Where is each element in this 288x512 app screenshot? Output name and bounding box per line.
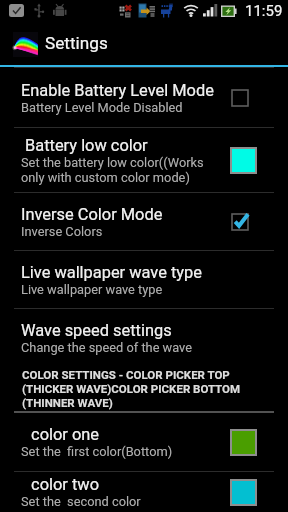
button[interactable]: Wave speed settings (0, 309, 288, 366)
button[interactable]: Live wallpaper wave type (0, 251, 288, 308)
staticText: color two (27, 475, 99, 494)
staticText: Inverse Color Mode (21, 205, 163, 224)
staticText: Set the battery low color((Works only wi… (21, 155, 204, 185)
button[interactable]: Pick colour (230, 479, 257, 506)
staticText: Set the second color (21, 494, 141, 509)
button[interactable]: Pick colour (230, 147, 257, 174)
staticText: Battery Level Mode Disabled (21, 100, 183, 115)
staticText: Settings (45, 33, 108, 53)
staticText: Inverse Colors (21, 224, 103, 239)
button[interactable]: Checked (230, 208, 257, 235)
staticText: 11:59 (245, 2, 283, 20)
button[interactable]: Pick colour (230, 429, 257, 456)
staticText: Wave speed settings (21, 321, 172, 340)
button[interactable]: color one (0, 413, 288, 471)
button[interactable]: Inverse Color Mode (0, 193, 288, 250)
other: App icon (13, 32, 38, 57)
staticText: COLOR SETTINGS - COLOR PICKER TOP (THICK… (22, 368, 250, 410)
button[interactable]: Unchecked (230, 84, 257, 111)
staticText: Enable Battery Level Mode (21, 81, 214, 100)
button[interactable]: Battery low color (0, 128, 288, 192)
staticText: Live wallpaper wave type (21, 263, 202, 282)
staticText: Live wallpaper wave type (21, 282, 163, 297)
staticText: Battery low color (21, 136, 148, 155)
button[interactable]: Enable Battery Level Mode (0, 68, 288, 127)
staticText: Set the first color(Bottom) (21, 444, 173, 459)
button[interactable]: color two (0, 472, 288, 512)
staticText: Change the speed of the wave (21, 340, 193, 355)
staticText: color one (27, 425, 100, 444)
